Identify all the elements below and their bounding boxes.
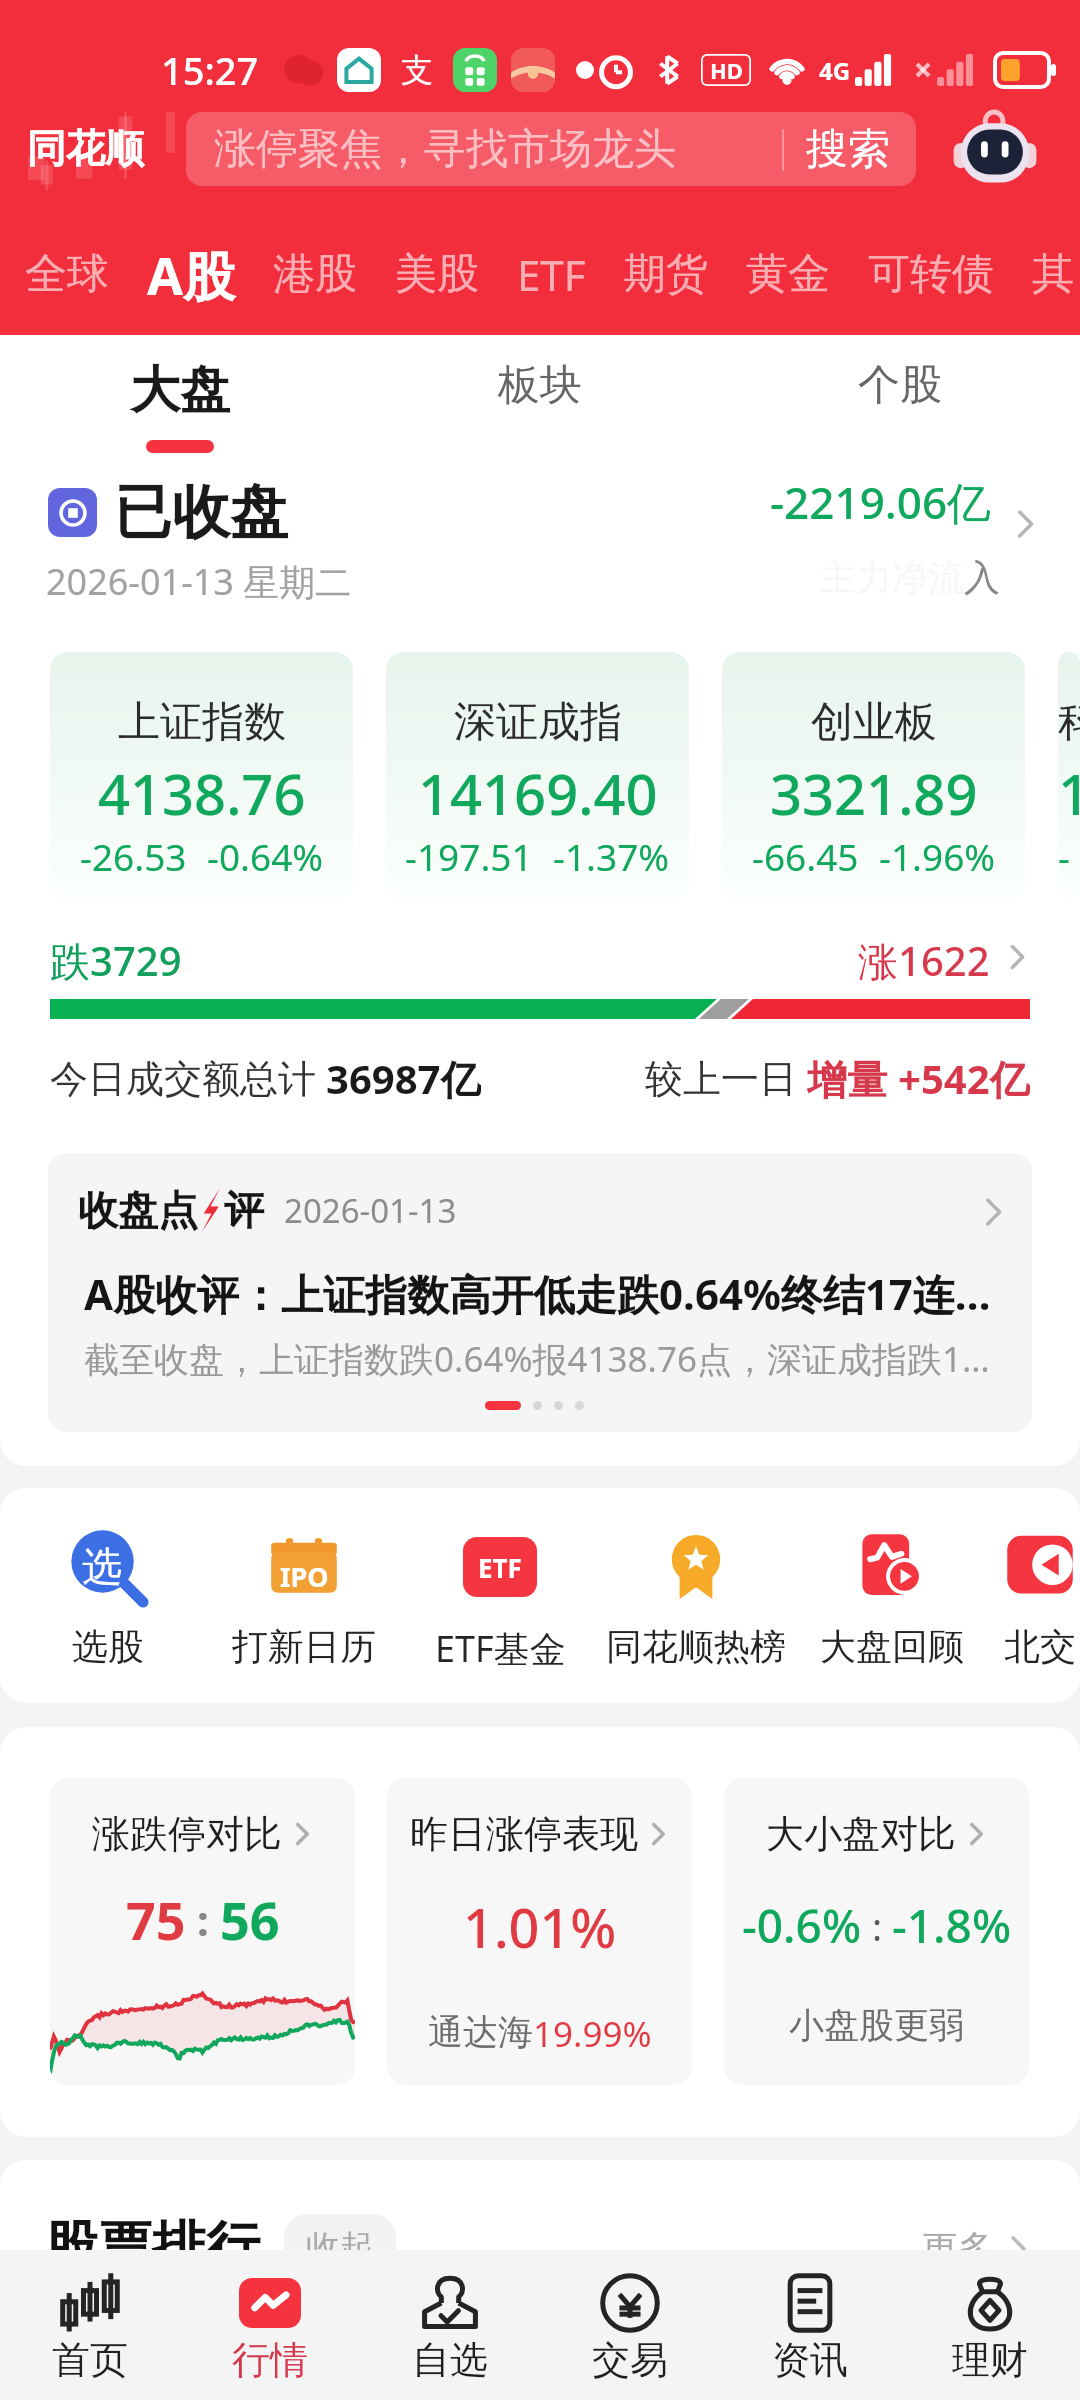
button[interactable]: 科创50 [1058, 652, 1080, 903]
staticText: 自选 [412, 2336, 488, 2384]
staticText: 期货 [624, 248, 708, 301]
button[interactable]: 涨跌停对比 [50, 1778, 355, 2085]
button[interactable]: 大小盘对比 [724, 1778, 1029, 2085]
staticText: 大盘回顾 [820, 1624, 964, 1669]
staticText: 通达海 [428, 2010, 533, 2054]
staticText: 75 [126, 1884, 186, 1955]
button[interactable]: 黄金 [746, 248, 830, 301]
button[interactable]: 美股 [395, 248, 479, 301]
staticText: -0.64% [207, 831, 324, 881]
staticText: 截至收盘，上证指数跌0.64%报4138.76点，深证成指跌1… [84, 1335, 990, 1383]
button[interactable]: 深证成指 [386, 652, 689, 903]
button[interactable]: 个股 [720, 359, 1080, 422]
staticText: 15:27 [161, 44, 259, 96]
staticText: 可转债 [868, 248, 994, 301]
staticText: 板块 [498, 359, 582, 412]
button[interactable]: 交易 [540, 2250, 720, 2400]
staticText: 同花顺 [27, 124, 144, 173]
staticText: 股票排行 [44, 2213, 260, 2281]
button[interactable]: 同花顺热榜 [598, 1528, 794, 1669]
staticText: 行情 [232, 2336, 308, 2384]
button[interactable]: 可转债 [868, 248, 994, 301]
button[interactable]: 上证指数 [50, 652, 353, 903]
staticText: 已收盘 [114, 476, 288, 549]
staticText: -26.53 [80, 831, 187, 881]
button[interactable]: 选 [10, 1528, 206, 1669]
staticText: 搜索 [806, 123, 890, 176]
staticText: 2026-01-13 [284, 1188, 457, 1233]
staticText: -2219.06亿 [770, 472, 992, 532]
button[interactable]: AI 助手 [947, 104, 1043, 200]
button[interactable]: 港股 [273, 248, 357, 301]
button[interactable]: 大盘回顾 [794, 1528, 990, 1669]
staticText: -66.45 [752, 831, 859, 881]
staticText: 交易 [592, 2336, 668, 2384]
button[interactable]: A股 [147, 239, 235, 310]
button[interactable]: 首页 [0, 2250, 180, 2400]
staticText: : [862, 1900, 892, 1952]
button[interactable]: IPO [206, 1528, 402, 1669]
staticText: 其他 [1032, 248, 1061, 301]
staticText: 4138.76 [98, 755, 306, 831]
staticText: IPO [280, 1558, 329, 1595]
button[interactable]: ETF [402, 1528, 598, 1673]
button[interactable]: 期货 [624, 248, 708, 301]
staticText: 大小盘对比 [766, 1810, 956, 1858]
staticText: 小盘股更弱 [789, 2003, 964, 2047]
staticText: 涨1622 [858, 933, 990, 981]
button[interactable]: 行情 [180, 2250, 360, 2400]
staticText: 美股 [395, 248, 479, 301]
staticText: A股收评：上证指数高开低走跌0.64%终结17连… [84, 1265, 991, 1322]
staticText: 增量 [807, 1051, 898, 1101]
button[interactable]: 昨日涨停表现 [387, 1778, 692, 2085]
staticText: 昨日涨停表现 [410, 1810, 638, 1858]
staticText: 入 [964, 555, 1000, 600]
staticText: 选 [82, 1541, 122, 1591]
button[interactable]: 其他 [1032, 248, 1061, 301]
button[interactable]: ETF [517, 246, 586, 303]
staticText: 资讯 [772, 2336, 848, 2384]
staticText: 4G [819, 54, 851, 87]
staticText: 个股 [858, 359, 942, 412]
staticText: HD [710, 55, 743, 85]
button[interactable]: 自选 [360, 2250, 540, 2400]
staticText: 北交 [1004, 1624, 1076, 1669]
button[interactable]: 全球 [25, 248, 109, 301]
staticText: 主力净流 [820, 555, 964, 600]
staticText: 56 [220, 1884, 280, 1955]
button[interactable]: 跌3729 [50, 933, 1030, 981]
staticText: : [186, 1891, 220, 1948]
staticText: 涨跌停对比 [92, 1810, 282, 1858]
staticText: 较上一日 [645, 1051, 807, 1101]
staticText: 3321.89 [770, 755, 978, 831]
staticText: 19.99% [533, 2010, 652, 2058]
button[interactable]: 收盘点 [48, 1153, 1032, 1432]
button[interactable]: 已收盘 [0, 475, 1080, 605]
staticText: 14169.40 [418, 755, 658, 831]
staticText: ETF [478, 1550, 522, 1585]
staticText: 大盘 [130, 359, 230, 422]
staticText: 首页 [52, 2336, 128, 2384]
staticText: 深证成指 [454, 696, 622, 749]
button[interactable]: 大盘 [0, 359, 360, 453]
staticText: 支 [401, 50, 433, 90]
staticText: -23.1 [1058, 831, 1080, 881]
staticText: 选股 [72, 1624, 144, 1669]
staticText: +542亿 [898, 1051, 1030, 1101]
button[interactable]: 创业板 [722, 652, 1025, 903]
staticText: -1.96% [879, 831, 996, 881]
button[interactable]: 北交 [990, 1528, 1080, 1669]
button[interactable]: 涨停聚焦，寻找市场龙头 [186, 112, 916, 186]
staticText: 收起 [306, 2226, 374, 2269]
staticText: 上证指数 [118, 696, 286, 749]
staticText: -1.37% [553, 831, 670, 881]
staticText: ETF [517, 246, 586, 303]
staticText: -0.6% [742, 1894, 862, 1957]
staticText: 涨停聚焦，寻找市场龙头 [214, 123, 676, 176]
staticText: 创业板 [811, 696, 937, 749]
button[interactable]: 资讯 [720, 2250, 900, 2400]
button[interactable]: 理财 [900, 2250, 1080, 2400]
button[interactable]: 收起 [284, 2214, 396, 2281]
staticText: 评 [224, 1185, 264, 1235]
button[interactable]: 板块 [360, 359, 720, 422]
